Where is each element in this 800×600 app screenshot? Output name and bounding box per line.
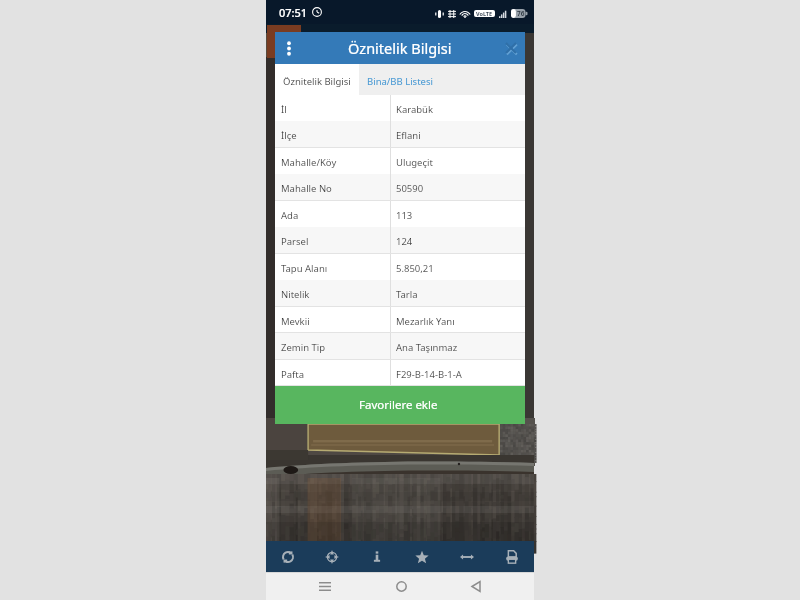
button[interactable]: Favorilere ekle [275, 386, 525, 424]
staticText: Ana Taşınmaz [396, 341, 458, 354]
button[interactable]: Tapu Alanı [275, 254, 525, 280]
button[interactable]: Parsel [275, 227, 525, 253]
staticText: Zemin Tip [281, 341, 326, 354]
button[interactable]: Mevkii [275, 307, 525, 333]
button[interactable]: Refresh [266, 541, 310, 572]
staticText: Pafta [281, 368, 305, 381]
staticText: 07:51 [279, 5, 308, 20]
staticText: VoLTE [476, 10, 493, 17]
staticText: Favorilere ekle [359, 397, 438, 413]
button[interactable]: Zemin Tip [275, 333, 525, 359]
staticText: Bina/BB Listesi [367, 75, 433, 88]
staticText: Parsel [281, 235, 309, 248]
button[interactable]: Öznitelik Bilgisi [275, 64, 359, 95]
staticText: Karabük [396, 103, 434, 116]
button[interactable]: Measure [444, 541, 489, 572]
button[interactable]: Pafta [275, 360, 525, 386]
staticText: Nitelik [281, 288, 310, 301]
staticText: Mezarlık Yanı [396, 315, 455, 328]
staticText: F29-B-14-B-1-A [396, 368, 462, 381]
staticText: Ulugeçit [396, 156, 433, 169]
staticText: 113 [396, 209, 413, 222]
button[interactable]: More options [275, 32, 303, 64]
staticText: Ada [281, 209, 299, 222]
button[interactable]: İlçe [275, 121, 525, 147]
button[interactable]: Ada [275, 201, 525, 227]
staticText: Eflani [396, 129, 421, 142]
staticText: Tarla [396, 288, 418, 301]
staticText: Mahalle No [281, 182, 332, 195]
staticText: 50590 [396, 182, 424, 195]
button[interactable]: Nitelik [275, 280, 525, 306]
staticText: Mahalle/Köy [281, 156, 337, 169]
staticText: İl [281, 103, 287, 116]
staticText: İlçe [281, 129, 297, 142]
staticText: 76 [517, 9, 525, 18]
button[interactable]: Close [497, 32, 525, 64]
button[interactable]: Locate [310, 541, 354, 572]
staticText: Öznitelik Bilgisi [348, 38, 452, 58]
button[interactable]: Recent apps [311, 572, 339, 600]
button[interactable]: Info [354, 541, 399, 572]
staticText: Mevkii [281, 315, 310, 328]
button[interactable]: Print [489, 541, 534, 572]
staticText: 124 [396, 235, 413, 248]
button[interactable]: Back [462, 572, 490, 600]
button[interactable]: İl [275, 95, 525, 121]
staticText: Öznitelik Bilgisi [283, 75, 351, 88]
button[interactable]: Mahalle No [275, 174, 525, 200]
staticText: Tapu Alanı [281, 262, 328, 275]
button[interactable]: Mahalle/Köy [275, 148, 525, 174]
button[interactable]: Bina/BB Listesi [359, 64, 441, 95]
button[interactable]: Home [387, 572, 415, 600]
button[interactable]: Favorite [399, 541, 444, 572]
staticText: 5.850,21 [396, 262, 434, 275]
